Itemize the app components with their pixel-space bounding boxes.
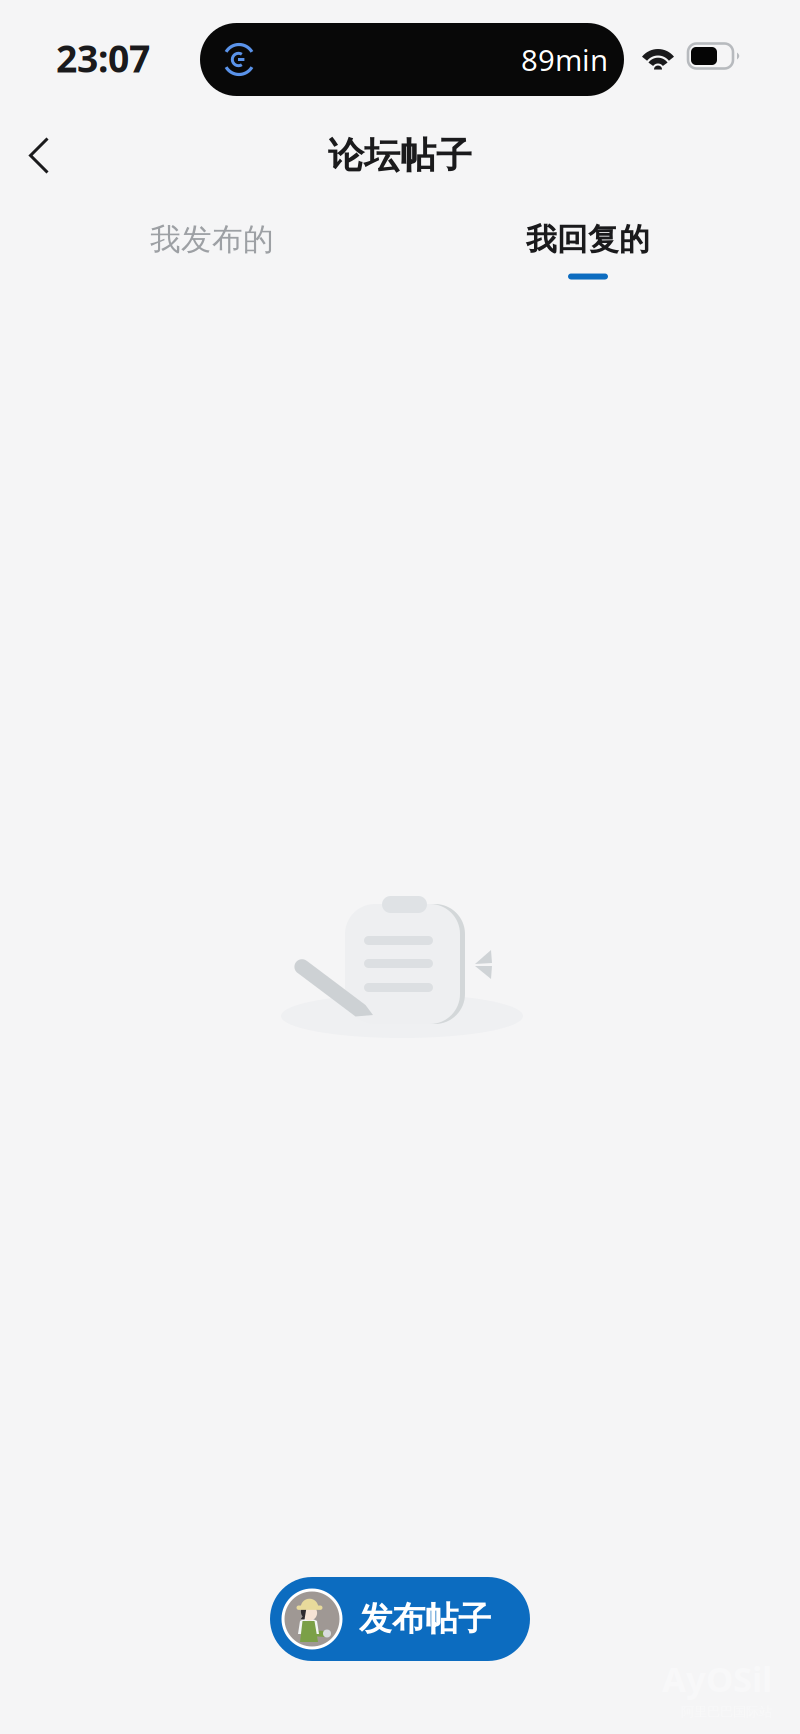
staticText: 我发布的	[150, 221, 274, 258]
staticText: 论坛帖子	[328, 133, 472, 178]
button[interactable]: 我回复的	[400, 218, 776, 279]
button[interactable]: 发布帖子	[270, 1577, 530, 1661]
staticText: 89min	[521, 40, 608, 79]
button[interactable]: 我发布的	[24, 218, 400, 279]
staticText: 发布帖子	[359, 1598, 491, 1639]
staticText: 我回复的	[526, 221, 650, 258]
button[interactable]: Back	[0, 116, 71, 194]
staticText: 23:07	[56, 33, 150, 83]
